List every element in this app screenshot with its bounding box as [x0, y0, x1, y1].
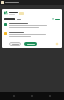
button[interactable] [4, 23, 60, 29]
button[interactable]: Home [28, 92, 36, 100]
button[interactable] [24, 42, 37, 46]
button[interactable]: Filter [52, 18, 60, 20]
button[interactable] [4, 32, 60, 38]
button[interactable]: Filter [2, 9, 62, 48]
button[interactable]: Recents [46, 92, 54, 100]
button[interactable]: More info [55, 42, 59, 46]
button[interactable] [9, 42, 21, 46]
button[interactable]: Back [10, 92, 18, 100]
